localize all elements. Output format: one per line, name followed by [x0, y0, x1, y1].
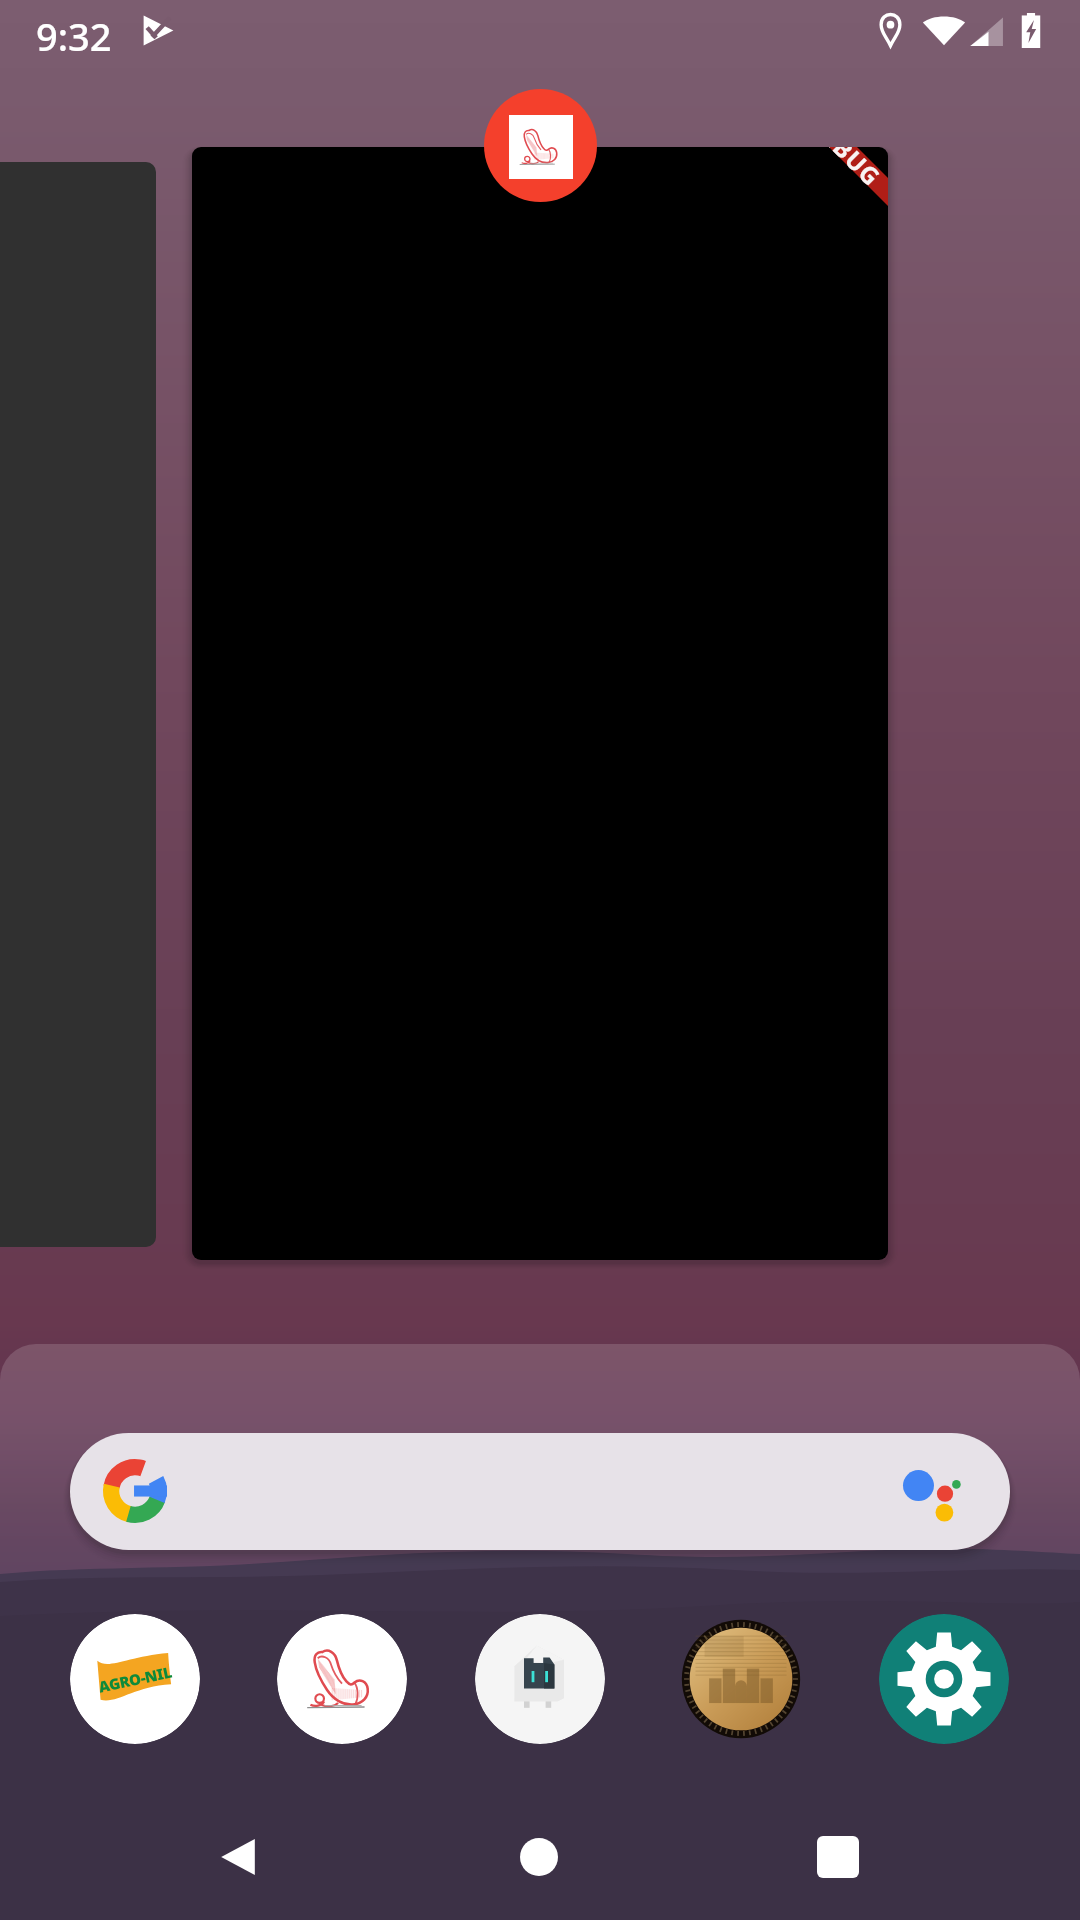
button[interactable]: Settings — [879, 1614, 1009, 1744]
button[interactable]: App window — [192, 147, 888, 1260]
button[interactable]: Back — [190, 1809, 286, 1905]
button[interactable]: Agro-Nil — [70, 1614, 200, 1744]
staticText: 9:32 — [36, 10, 112, 62]
button[interactable]: Open app — [484, 89, 597, 202]
button[interactable]: Search — [70, 1433, 1010, 1550]
button[interactable]: Recent apps — [790, 1809, 886, 1905]
staticText: AGRO-NIL — [97, 1661, 174, 1697]
button[interactable]: Phone — [277, 1614, 407, 1744]
staticText: DEBUG — [803, 147, 888, 193]
button[interactable]: Robot app — [475, 1614, 605, 1744]
button[interactable]: Home — [491, 1809, 587, 1905]
button[interactable]: Chamber of Commerce — [676, 1614, 806, 1744]
